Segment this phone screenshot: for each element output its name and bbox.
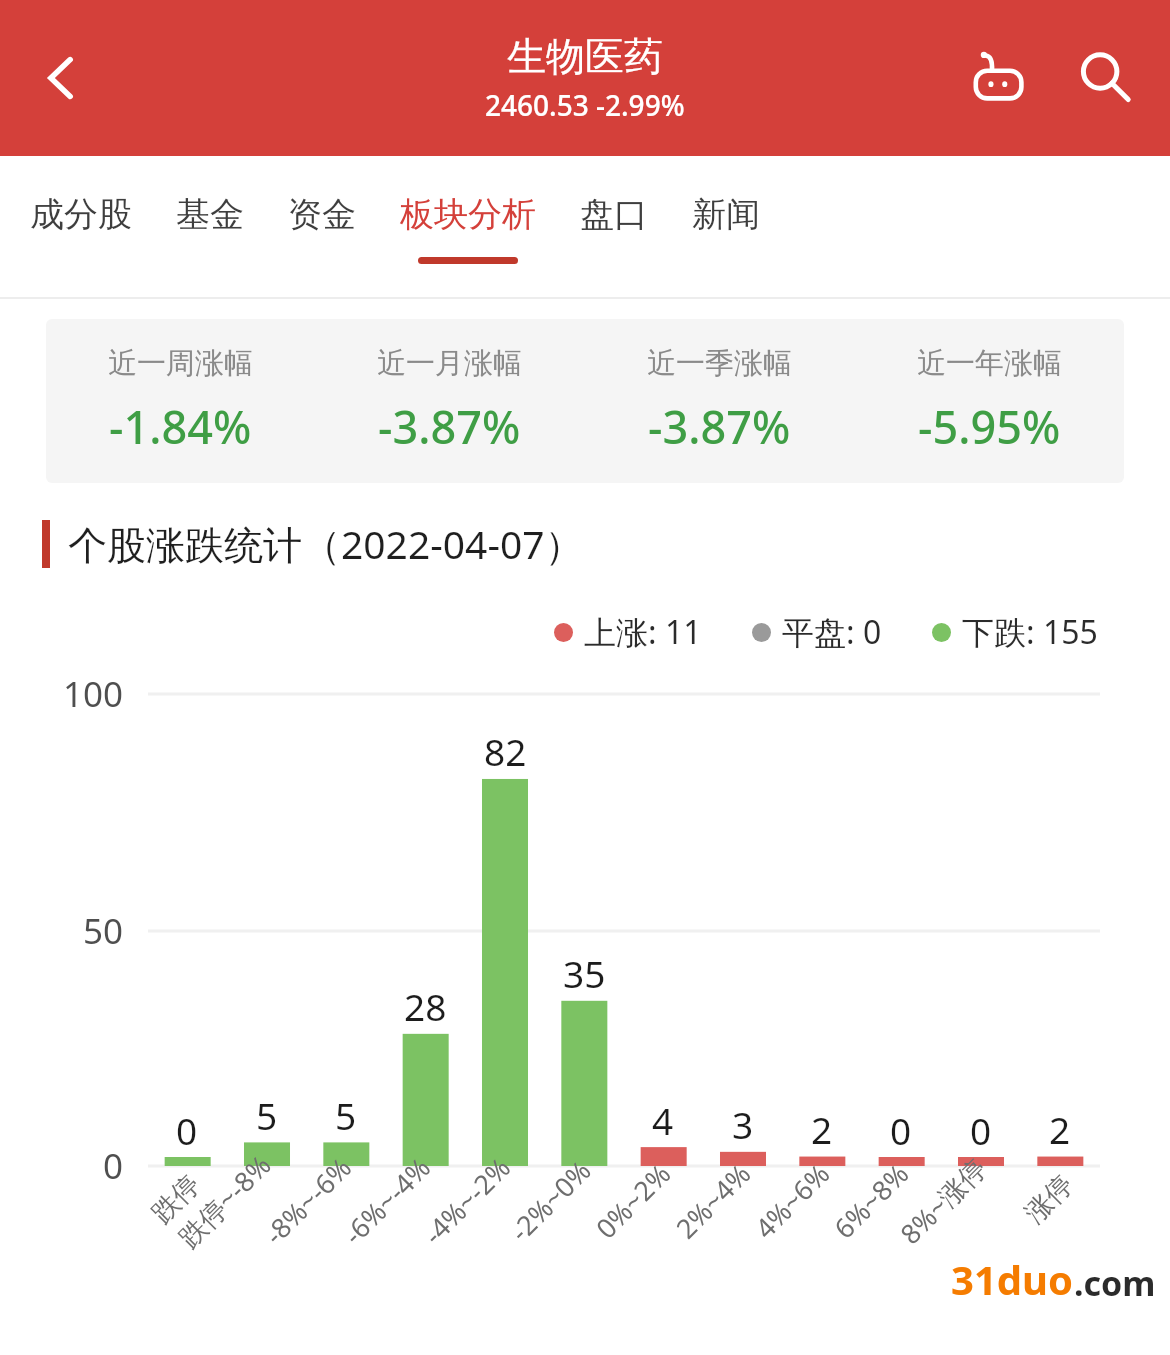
staticText: 0%~2%	[587, 1155, 679, 1246]
staticText: 0	[103, 1142, 124, 1190]
staticText: 板块分析	[400, 193, 536, 236]
button[interactable]: 新闻	[692, 156, 760, 299]
staticText: 2%~4%	[667, 1155, 759, 1246]
staticText: 31duo	[951, 1252, 1074, 1306]
staticText: 生物医药	[507, 32, 663, 81]
staticText: -2%~0%	[502, 1152, 598, 1249]
staticText: 近一季涨幅	[647, 345, 792, 382]
staticText: 跌停	[145, 1168, 207, 1230]
staticText: -3.87%	[648, 396, 791, 457]
staticText: -1.84%	[109, 396, 252, 457]
button[interactable]: 资金	[288, 156, 356, 299]
button[interactable]: Assistant	[956, 33, 1046, 123]
staticText: 上涨: 11	[584, 610, 702, 654]
staticText: 2	[1049, 1104, 1071, 1154]
staticText: 28	[404, 981, 447, 1031]
staticText: 35	[563, 948, 606, 998]
staticText: -5.95%	[918, 396, 1061, 457]
button[interactable]: 板块分析	[400, 156, 536, 299]
staticText: 100	[63, 670, 124, 718]
staticText: 0	[890, 1105, 912, 1155]
staticText: 近一月涨幅	[377, 345, 522, 382]
staticText: 新闻	[692, 193, 760, 236]
button[interactable]: Search	[1060, 33, 1150, 123]
button[interactable]: 成分股	[30, 156, 132, 299]
staticText: 资金	[288, 193, 356, 236]
staticText: 50	[83, 907, 124, 955]
staticText: 6%~8%	[825, 1155, 917, 1246]
staticText: 近一周涨幅	[108, 345, 253, 382]
staticText: 跌停~-8%	[170, 1146, 279, 1255]
staticText: 下跌: 155	[962, 610, 1098, 654]
staticText: -8%~-6%	[256, 1149, 359, 1252]
staticText: 盘口	[580, 193, 648, 236]
staticText: 5	[335, 1090, 357, 1140]
staticText: -3.87%	[378, 396, 521, 457]
staticText: 基金	[176, 193, 244, 236]
staticText: 0	[970, 1105, 992, 1155]
staticText: 4	[652, 1095, 674, 1145]
staticText: 2	[811, 1104, 833, 1154]
staticText: 平盘: 0	[782, 610, 882, 654]
button[interactable]: 基金	[176, 156, 244, 299]
staticText: 涨停	[1018, 1168, 1080, 1230]
button[interactable]: Back	[18, 35, 104, 121]
staticText: 4%~6%	[746, 1155, 838, 1246]
staticText: 8%~涨停	[892, 1149, 994, 1252]
staticText: 82	[484, 726, 527, 776]
staticText: .com	[1074, 1260, 1156, 1306]
staticText: 成分股	[30, 193, 132, 236]
staticText: 2460.53 -2.99%	[485, 86, 685, 124]
staticText: -4%~-2%	[415, 1149, 518, 1252]
staticText: 个股涨跌统计（2022-04-07）	[68, 517, 584, 570]
staticText: -6%~-4%	[335, 1149, 438, 1252]
staticText: 近一年涨幅	[917, 345, 1062, 382]
staticText: 5	[256, 1090, 278, 1140]
button[interactable]: 盘口	[580, 156, 648, 299]
staticText: 0	[176, 1105, 198, 1155]
staticText: 3	[732, 1099, 754, 1149]
